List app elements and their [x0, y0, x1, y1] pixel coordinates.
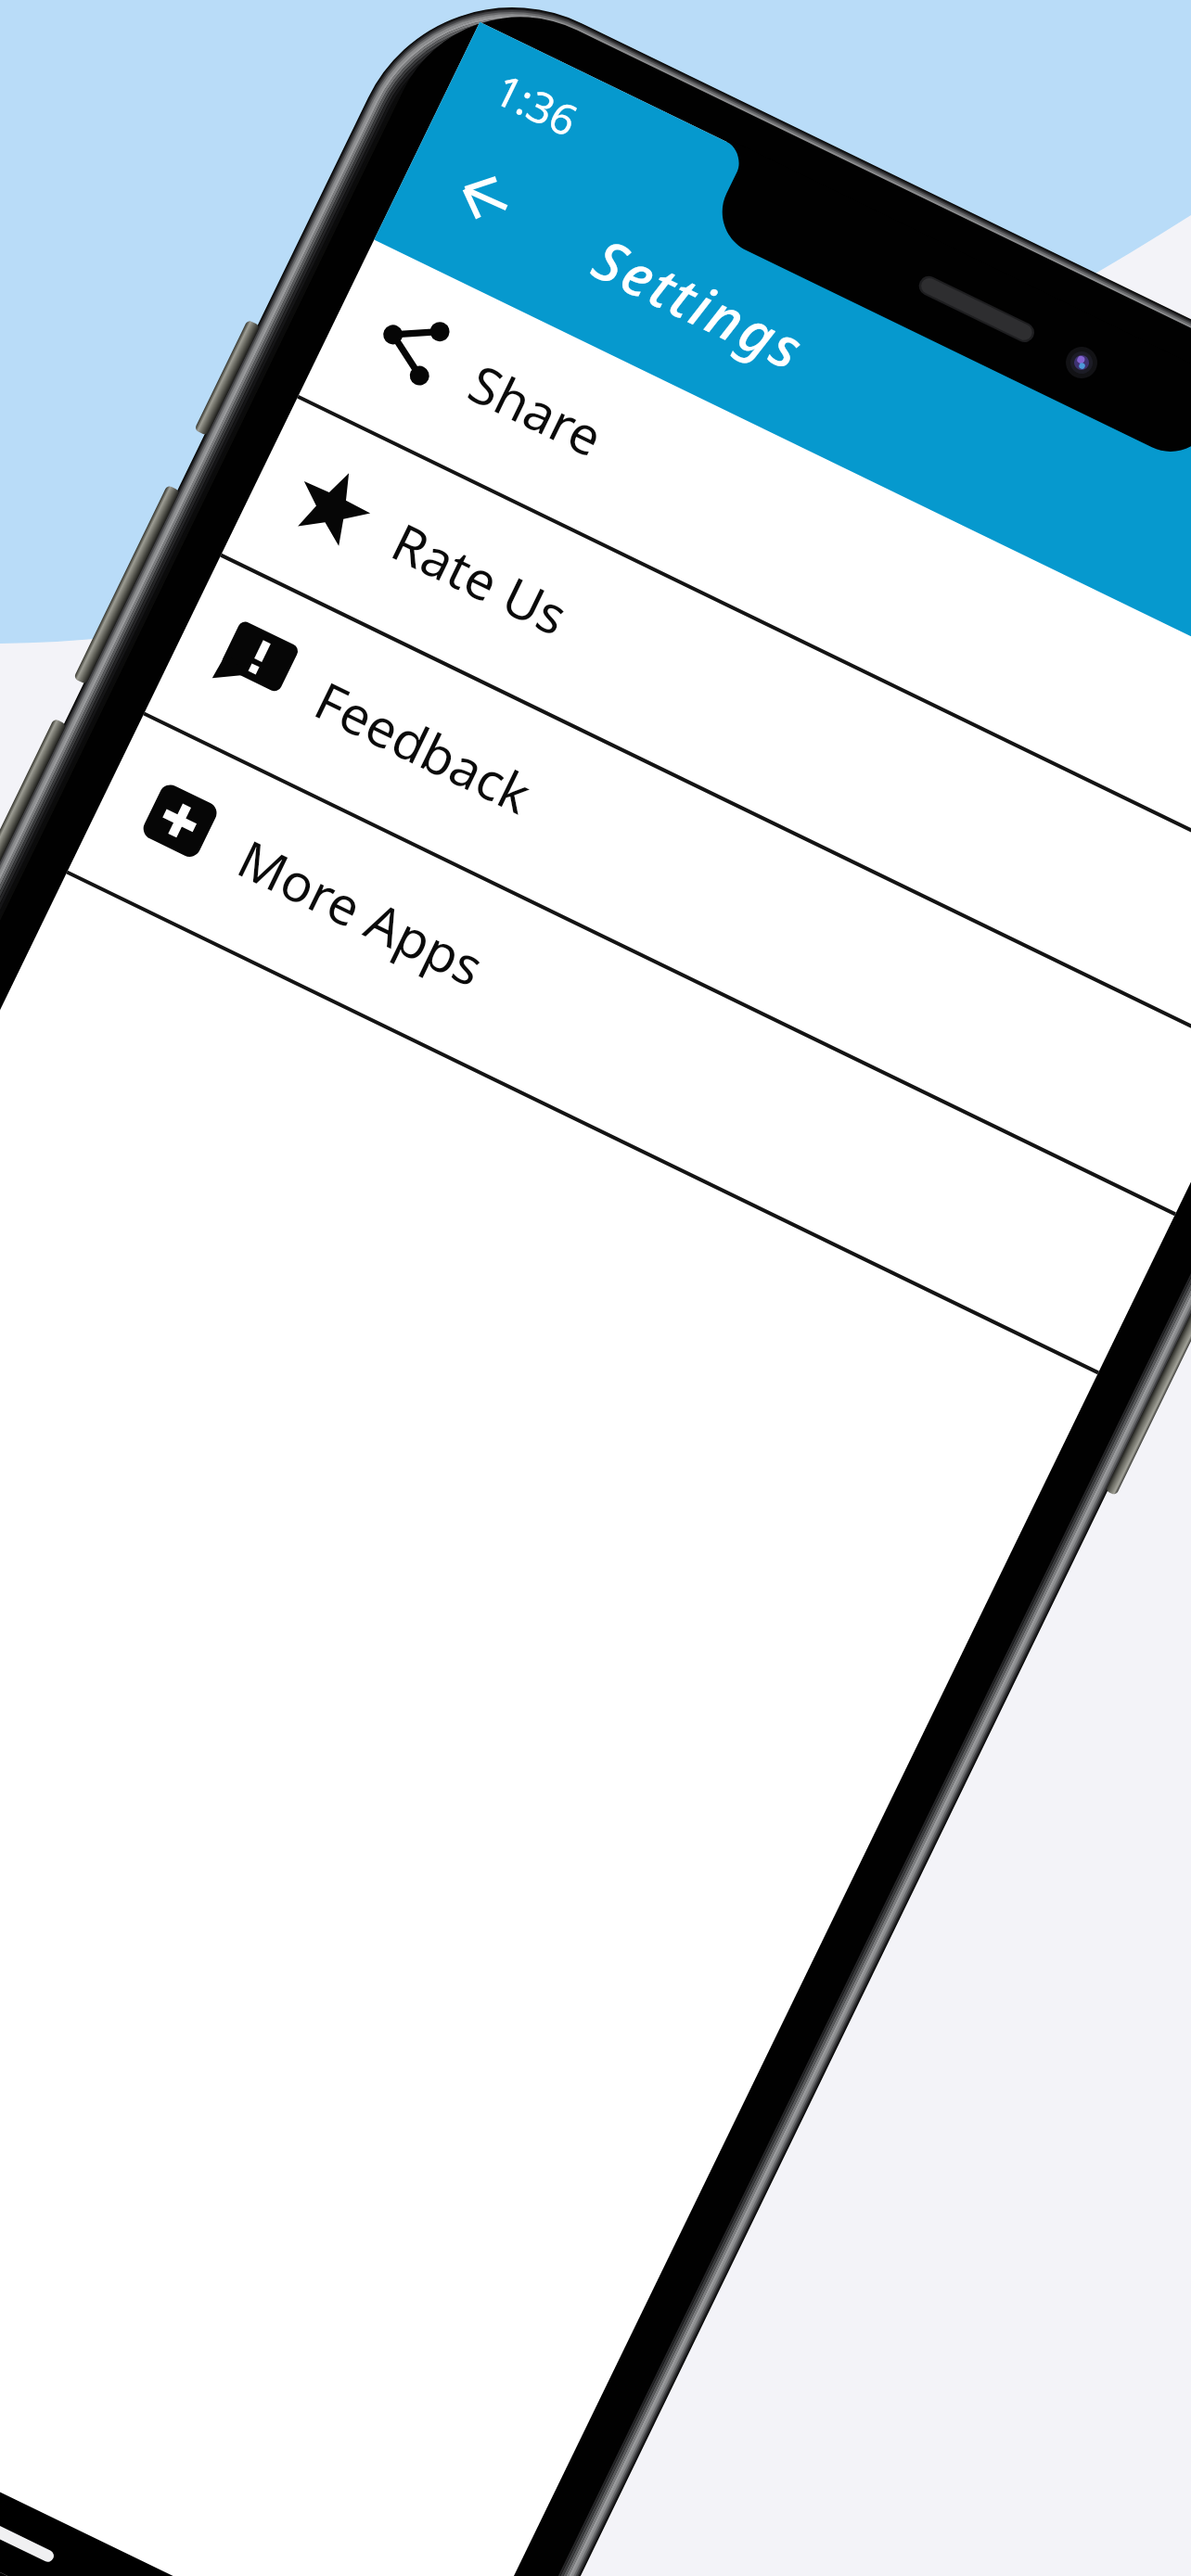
- button[interactable]: Share: [297, 240, 1191, 899]
- staticText: Feedback: [304, 664, 544, 829]
- staticText: 1:36: [485, 60, 588, 150]
- button[interactable]: More Apps: [66, 715, 1174, 1374]
- staticText: Share: [458, 347, 615, 472]
- button[interactable]: Back: [448, 160, 530, 242]
- staticText: Settings: [581, 220, 817, 387]
- staticText: More Apps: [227, 823, 496, 1001]
- button[interactable]: Feedback: [143, 557, 1191, 1216]
- button[interactable]: Rate Us: [220, 398, 1191, 1057]
- staticText: Rate Us: [381, 506, 580, 650]
